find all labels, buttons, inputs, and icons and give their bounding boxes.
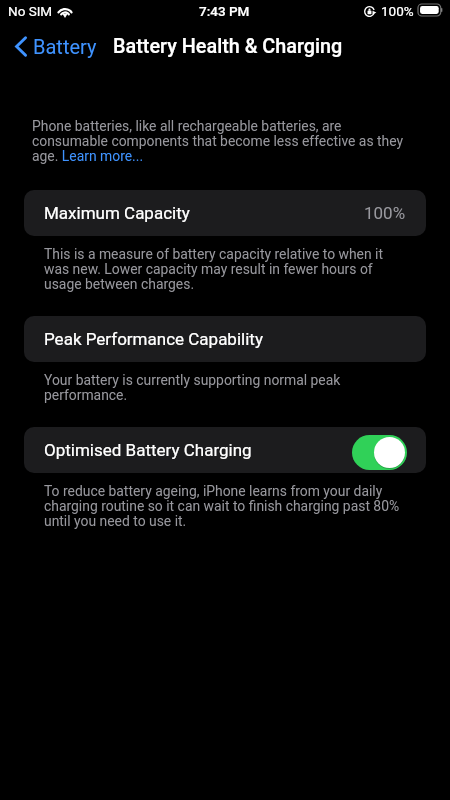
button[interactable]: Optimised Battery Charging toggle: [352, 435, 407, 470]
button[interactable]: Maximum Capacity: [24, 190, 426, 236]
staticText: Phone batteries, like all rechargeable b…: [32, 118, 410, 164]
staticText: Your battery is currently supporting nor…: [44, 372, 406, 403]
button[interactable]: Learn more about battery health: [62, 148, 143, 165]
button[interactable]: Optimised Battery Charging: [24, 427, 426, 473]
button[interactable]: Peak Performance Capability: [24, 316, 426, 362]
staticText: To reduce battery ageing, iPhone learns …: [44, 483, 406, 529]
staticText: This is a measure of battery capacity re…: [44, 246, 406, 292]
staticText: Optimised Battery Charging: [44, 440, 252, 460]
staticText: 7:43 PM: [199, 3, 250, 19]
staticText: 100%: [364, 203, 406, 223]
staticText: Battery: [33, 35, 97, 58]
staticText: Peak Performance Capability: [44, 329, 263, 349]
button[interactable]: Battery: [0, 31, 107, 62]
staticText: No SIM: [8, 3, 53, 19]
staticText: Maximum Capacity: [44, 203, 190, 223]
staticText: Battery Health & Charging: [113, 35, 343, 58]
staticText: 100%: [381, 3, 414, 19]
